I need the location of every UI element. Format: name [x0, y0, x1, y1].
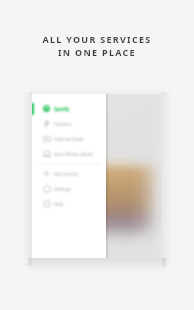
staticText: ALL YOUR SERVICES — [42, 33, 152, 45]
staticText: Spotify — [54, 106, 70, 112]
button[interactable]: Pandora — [32, 116, 106, 131]
staticText: Settings — [54, 186, 71, 192]
button[interactable]: Internet Radio — [32, 131, 106, 146]
button[interactable]: Settings — [32, 181, 106, 196]
staticText: Help — [54, 201, 64, 207]
staticText: Internet Radio — [54, 136, 84, 142]
button[interactable]: Help — [32, 196, 106, 211]
staticText: Add Service — [54, 171, 78, 177]
button[interactable]: Ana's Music Library — [32, 146, 106, 161]
staticText: Pandora — [54, 121, 72, 127]
button[interactable]: Add Service — [32, 166, 106, 181]
staticText: Ana's Music Library — [54, 151, 94, 157]
staticText: IN ONE PLACE — [58, 46, 136, 58]
button[interactable]: Spotify — [32, 101, 106, 116]
